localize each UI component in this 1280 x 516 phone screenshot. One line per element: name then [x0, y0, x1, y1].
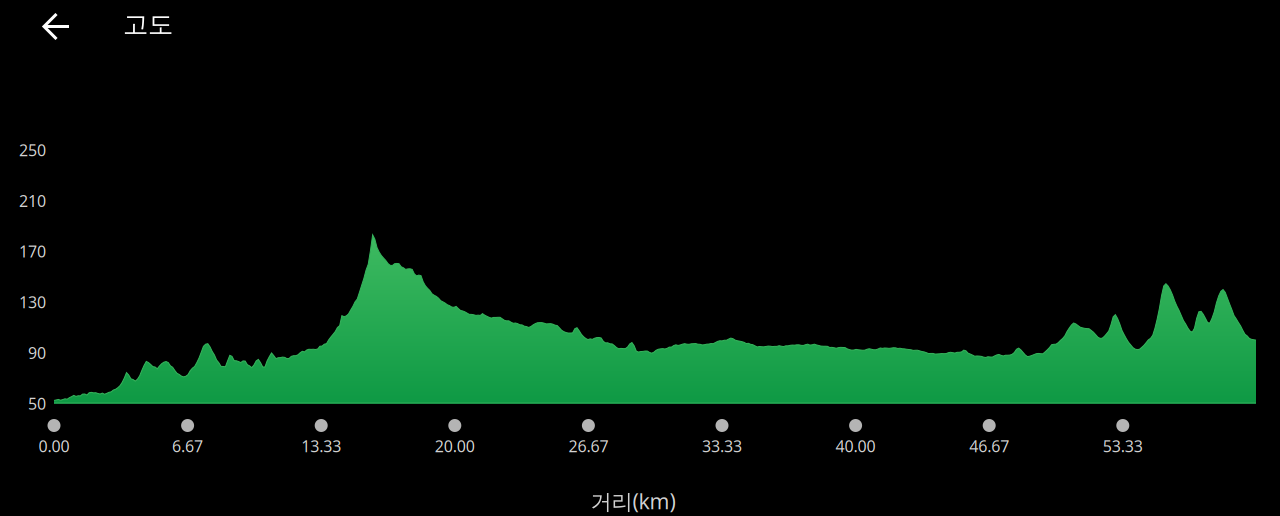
staticText: 6.67 [172, 435, 203, 457]
staticText: 고도 [123, 9, 173, 40]
staticText: 90 [28, 342, 46, 363]
staticText: 250 [19, 139, 46, 161]
staticText: 170 [19, 241, 46, 262]
staticText: 50 [28, 393, 46, 414]
staticText: 46.67 [969, 435, 1009, 457]
staticText: 33.33 [702, 435, 742, 457]
staticText: 26.67 [568, 435, 608, 457]
staticText: 40.00 [836, 435, 876, 457]
staticText: 거리(km) [590, 487, 675, 515]
staticText: 13.33 [301, 435, 341, 457]
staticText: 210 [19, 190, 46, 211]
staticText: 20.00 [435, 435, 475, 457]
staticText: 0.00 [38, 435, 69, 457]
staticText: 130 [19, 291, 46, 313]
button[interactable]: Back [30, 0, 83, 53]
staticText: 53.33 [1103, 435, 1143, 457]
